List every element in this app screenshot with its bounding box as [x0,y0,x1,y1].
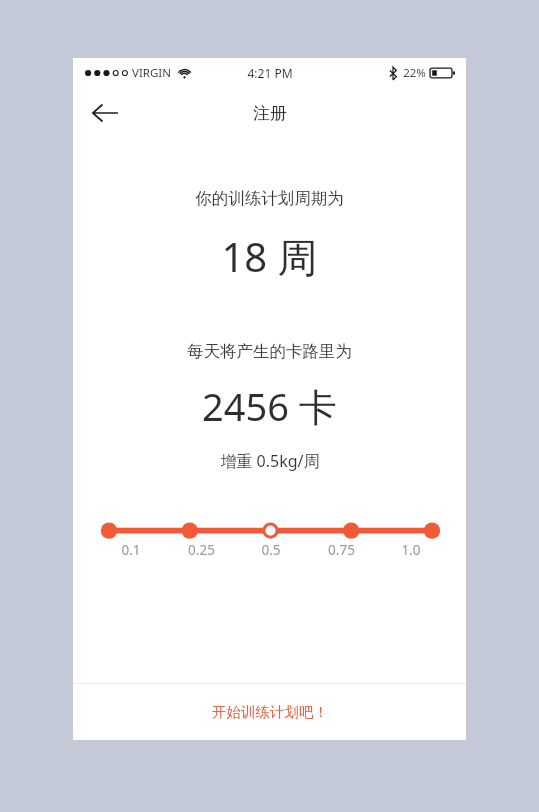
staticText: 0.1 [121,541,141,559]
staticText: 开始训练计划吧！ [212,703,328,721]
staticText: 0.75 [328,541,355,559]
staticText: 增重 0.5kg/周 [220,450,320,472]
staticText: 2456 卡 [202,380,337,432]
button[interactable]: 开始训练计划吧！ [73,684,466,740]
button[interactable] [73,512,466,542]
staticText: VIRGIN [132,65,171,81]
staticText: 注册 [253,103,287,124]
staticText: 每天将产生的卡路里为 [187,341,352,362]
staticText: 1.0 [401,541,421,559]
staticText: 你的训练计划周期为 [195,188,344,209]
staticText: 18 周 [221,229,318,284]
button[interactable]: Back [83,91,127,135]
staticText: 22% [403,65,426,81]
staticText: 0.25 [188,541,215,559]
staticText: 4:21 PM [247,65,293,81]
staticText: 0.5 [261,541,281,559]
